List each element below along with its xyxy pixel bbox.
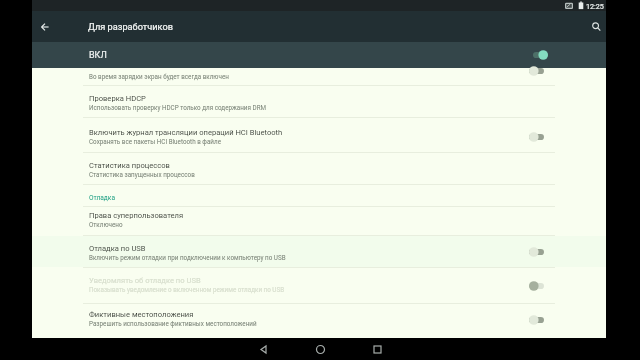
button[interactable]: Navigate up xyxy=(32,11,58,42)
button[interactable]: Search xyxy=(586,11,606,42)
staticText: Включить режим отладки при подключении к… xyxy=(89,254,286,261)
staticText: Фиктивные местоположения xyxy=(89,310,194,319)
staticText: Использовать проверку HDCP только для со… xyxy=(89,104,267,111)
button[interactable]: Права суперпользователя xyxy=(32,207,606,235)
staticText: Отключено xyxy=(89,221,123,228)
staticText: Отладка xyxy=(89,194,115,202)
button[interactable]: Статистика процессов xyxy=(32,153,606,184)
button[interactable]: Отладка по USB xyxy=(32,236,606,267)
button[interactable]: Home xyxy=(300,338,340,360)
staticText: Уведомлять об отладке по USB xyxy=(89,276,201,285)
button[interactable]: Recent apps xyxy=(357,338,397,360)
button[interactable]: Включить журнал трансляции операций HCI … xyxy=(32,118,606,152)
staticText: Статистика процессов xyxy=(89,161,170,170)
staticText: Статистика запущенных процессов xyxy=(89,171,195,178)
staticText: Проверка HDCP xyxy=(89,94,146,103)
staticText: 12:25 xyxy=(586,2,604,10)
staticText: Показывать уведомление о включенном режи… xyxy=(89,286,285,293)
button[interactable]: Проверка HDCP xyxy=(32,86,606,117)
button[interactable]: Back xyxy=(243,338,283,360)
staticText: Отладка по USB xyxy=(89,244,146,253)
staticText: ВКЛ xyxy=(89,50,107,61)
staticText: Разрешить использование фиктивных местоп… xyxy=(89,320,257,327)
button[interactable]: Фиктивные местоположения xyxy=(32,304,606,338)
staticText: Во время зарядки экран будет всегда вклю… xyxy=(89,73,229,80)
staticText: Сохранять все пакеты HCI Bluetooth в фай… xyxy=(89,138,221,145)
button[interactable]: Уведомлять об отладке по USB xyxy=(32,268,606,303)
staticText: Для разработчиков xyxy=(88,21,173,32)
staticText: Права суперпользователя xyxy=(89,211,184,220)
staticText: Включить журнал трансляции операций HCI … xyxy=(89,128,283,137)
button[interactable]: Во время зарядки экран будет всегда вклю… xyxy=(32,68,606,85)
button[interactable]: ВКЛ xyxy=(32,42,606,68)
